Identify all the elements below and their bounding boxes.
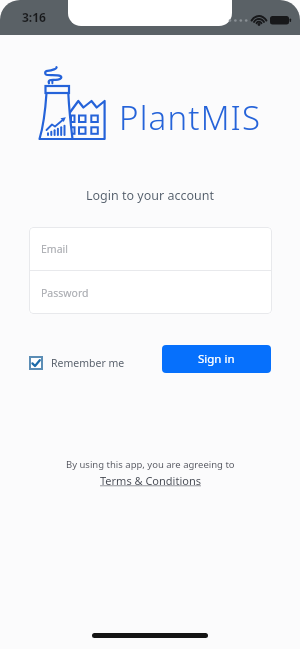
staticText: Remember me [51, 356, 125, 370]
staticText: PlantMIS [119, 95, 262, 140]
staticText: By using this app, you are agreeing to [66, 458, 235, 471]
button[interactable]: Password [29, 271, 272, 314]
staticText: Password [41, 286, 89, 300]
button[interactable]: Terms & Conditions [100, 473, 201, 488]
button[interactable]: Email [29, 227, 272, 270]
button[interactable]: Remember me [29, 356, 125, 370]
staticText: Sign in [198, 351, 235, 367]
staticText: Email [41, 242, 68, 256]
staticText: Login to your account [86, 187, 214, 204]
staticText: Terms & Conditions [100, 473, 201, 488]
staticText: 3:16 [22, 9, 46, 25]
button[interactable]: Sign in [162, 345, 271, 373]
